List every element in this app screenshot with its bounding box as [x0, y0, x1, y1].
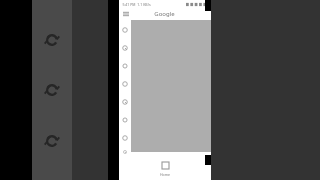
button[interactable]: Rail item 1	[119, 24, 131, 36]
staticText: Home	[160, 172, 170, 177]
button[interactable]: Rail item 5	[119, 96, 131, 108]
button[interactable]: Rail item 3	[119, 60, 131, 72]
staticText: Google	[154, 10, 175, 18]
button[interactable]: Home	[158, 158, 172, 172]
button[interactable]: Rail item 4	[119, 78, 131, 90]
button[interactable]: Rail item 8	[119, 150, 131, 154]
button[interactable]: Menu	[121, 9, 131, 19]
button[interactable]: Refresh	[41, 29, 63, 51]
button[interactable]: Rail item 2	[119, 42, 131, 54]
button[interactable]: Refresh	[41, 130, 63, 152]
button[interactable]: Refresh	[41, 79, 63, 101]
button[interactable]: Rail item 7	[119, 132, 131, 144]
button[interactable]: Rail item 6	[119, 114, 131, 126]
staticText: 5:41 PM 1.1 KB/s	[122, 2, 151, 7]
